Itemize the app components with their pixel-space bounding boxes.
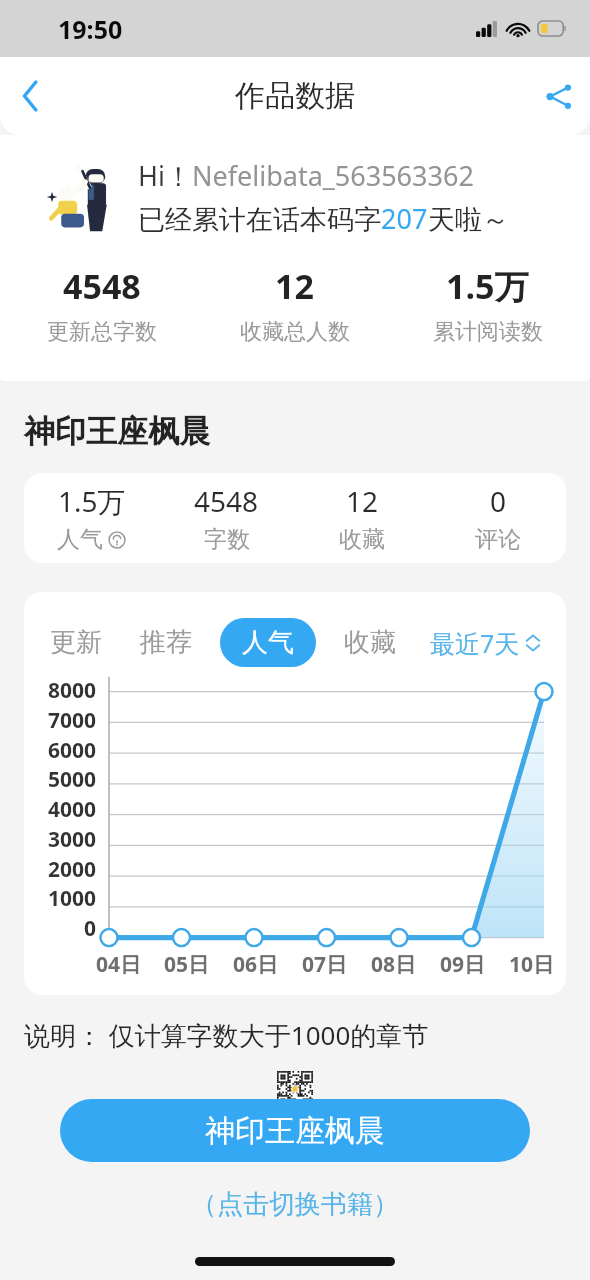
- staticText: Nefelibata_563563362: [192, 157, 474, 194]
- staticText: 6000: [47, 736, 96, 765]
- staticText: 8000: [47, 676, 96, 705]
- button[interactable]: 收藏: [342, 618, 398, 667]
- staticText: Hi！: [138, 157, 192, 194]
- staticText: （点击切换书籍）: [191, 1188, 399, 1221]
- staticText: 4000: [47, 795, 96, 824]
- staticText: 收藏: [339, 525, 385, 554]
- staticText: 7000: [47, 706, 96, 735]
- staticText: 评论: [475, 525, 521, 554]
- staticText: 0: [83, 914, 96, 943]
- staticText: 作品数据: [235, 77, 355, 115]
- staticText: 说明： 仅计算字数大于1000的章节: [24, 1017, 429, 1053]
- staticText: 收藏: [344, 626, 396, 659]
- staticText: 06日: [233, 950, 279, 979]
- staticText: 07日: [302, 950, 348, 979]
- staticText: 05日: [164, 950, 210, 979]
- staticText: 天啦～: [428, 203, 509, 237]
- staticText: 已经累计在话本码字: [138, 203, 381, 237]
- button[interactable]: 人气: [220, 618, 316, 667]
- staticText: 12: [346, 482, 379, 520]
- staticText: 12: [275, 263, 314, 309]
- staticText: 更新总字数: [47, 318, 157, 346]
- staticText: 3000: [47, 825, 96, 854]
- staticText: 09日: [440, 950, 486, 979]
- staticText: 10日: [509, 950, 555, 979]
- staticText: 207: [381, 200, 428, 237]
- staticText: 1000: [47, 884, 96, 913]
- staticText: 08日: [371, 950, 417, 979]
- staticText: 神印王座枫晨: [24, 412, 210, 451]
- staticText: 19:50: [58, 12, 123, 46]
- staticText: 1.5万: [58, 482, 126, 520]
- staticText: 神印王座枫晨: [205, 1112, 385, 1150]
- button[interactable]: 神印王座枫晨: [60, 1099, 530, 1162]
- staticText: 0: [490, 482, 507, 520]
- button[interactable]: 1.5万: [24, 473, 566, 563]
- staticText: 累计阅读数: [433, 318, 543, 346]
- staticText: 4548: [63, 263, 141, 309]
- staticText: 人气: [57, 525, 103, 554]
- button[interactable]: Back: [0, 66, 60, 126]
- staticText: 04日: [96, 950, 142, 979]
- button[interactable]: 更新: [48, 618, 104, 667]
- staticText: 5000: [47, 765, 96, 794]
- button[interactable]: （点击切换书籍）: [185, 1182, 405, 1227]
- staticText: 收藏总人数: [240, 318, 350, 346]
- button[interactable]: Share: [528, 65, 590, 127]
- button[interactable]: 最近7天: [426, 622, 544, 664]
- staticText: 4548: [194, 482, 259, 520]
- staticText: 字数: [204, 525, 250, 554]
- staticText: 更新: [50, 626, 102, 659]
- staticText: 推荐: [140, 626, 192, 659]
- staticText: 1.5万: [446, 263, 529, 309]
- staticText: 人气: [242, 626, 294, 659]
- staticText: 最近7天: [430, 626, 520, 660]
- button[interactable]: 推荐: [138, 618, 194, 667]
- staticText: 2000: [47, 855, 96, 884]
